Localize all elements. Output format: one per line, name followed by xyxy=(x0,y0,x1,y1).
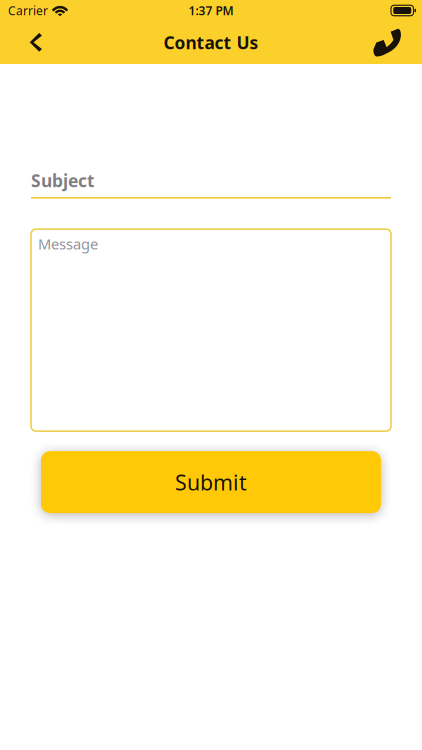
staticText: Contact Us xyxy=(163,31,258,54)
button[interactable]: Back xyxy=(14,21,58,64)
staticText: Message xyxy=(38,234,98,254)
button[interactable]: Submit xyxy=(41,451,381,513)
staticText: Carrier xyxy=(8,2,48,18)
button[interactable]: Subject xyxy=(31,169,391,199)
button[interactable]: Message xyxy=(31,229,391,431)
staticText: Submit xyxy=(175,468,247,496)
staticText: 1:37 PM xyxy=(188,2,233,18)
button[interactable]: Call xyxy=(365,21,409,64)
staticText: Subject xyxy=(31,169,95,192)
